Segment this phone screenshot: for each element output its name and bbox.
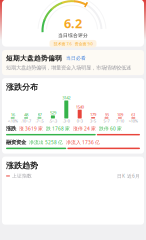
staticText: 当日综合评分 bbox=[58, 32, 88, 38]
staticText: 净流出 5258 亿 bbox=[29, 139, 63, 145]
staticText: 5~7 bbox=[103, 118, 109, 124]
staticText: 涨跌 bbox=[6, 125, 16, 132]
staticText: -7~-5 bbox=[35, 118, 43, 124]
staticText: 涨跌趋势 bbox=[6, 161, 38, 171]
staticText: 93 bbox=[104, 112, 108, 117]
staticText: 当日必看 bbox=[66, 55, 86, 61]
staticText: 融资资金 bbox=[6, 139, 26, 146]
staticText: 短期大盘趋势偏弱，增量资金入场明显，市场情绪较低迷 bbox=[6, 64, 131, 71]
button[interactable]: 短期大盘趋势偏弱 bbox=[0, 50, 146, 75]
staticText: 涨停 24 家 bbox=[73, 125, 96, 132]
staticText: 跌 1768 家 bbox=[46, 125, 70, 132]
staticText: 3142 bbox=[62, 95, 70, 100]
staticText: 日K bbox=[117, 173, 125, 179]
staticText: 87 bbox=[37, 112, 41, 117]
staticText: >10% bbox=[129, 118, 138, 124]
staticText: 0~3 bbox=[77, 118, 83, 124]
staticText: 技术面 7.6 bbox=[53, 41, 71, 46]
staticText: 16 bbox=[11, 112, 15, 117]
staticText: 61 bbox=[131, 112, 135, 117]
staticText: 资金面 9.0 bbox=[74, 41, 92, 46]
staticText: <-10% bbox=[8, 118, 18, 124]
staticText: 1540 bbox=[76, 104, 84, 110]
staticText: 179 bbox=[90, 111, 96, 117]
staticText: 近6月 bbox=[127, 173, 140, 179]
staticText: 涨跌分布 bbox=[6, 82, 38, 92]
staticText: 7~10 bbox=[116, 118, 124, 124]
staticText: 短期大盘趋势偏弱 bbox=[6, 54, 62, 62]
staticText: 529 bbox=[50, 110, 56, 115]
staticText: 6.2 bbox=[64, 15, 82, 32]
staticText: 跌停 60 家 bbox=[99, 125, 122, 132]
staticText: -10~-7 bbox=[21, 118, 31, 124]
staticText: 109 bbox=[117, 112, 123, 117]
staticText: 净流入 1736 亿 bbox=[66, 139, 100, 145]
staticText: -3~0 bbox=[63, 118, 70, 124]
staticText: 涨 3619 家 bbox=[19, 125, 43, 132]
staticText: 上证指数 bbox=[12, 173, 32, 179]
staticText: -5~-3 bbox=[49, 118, 57, 124]
staticText: 48 bbox=[24, 112, 28, 117]
staticText: 3~5 bbox=[90, 118, 96, 124]
